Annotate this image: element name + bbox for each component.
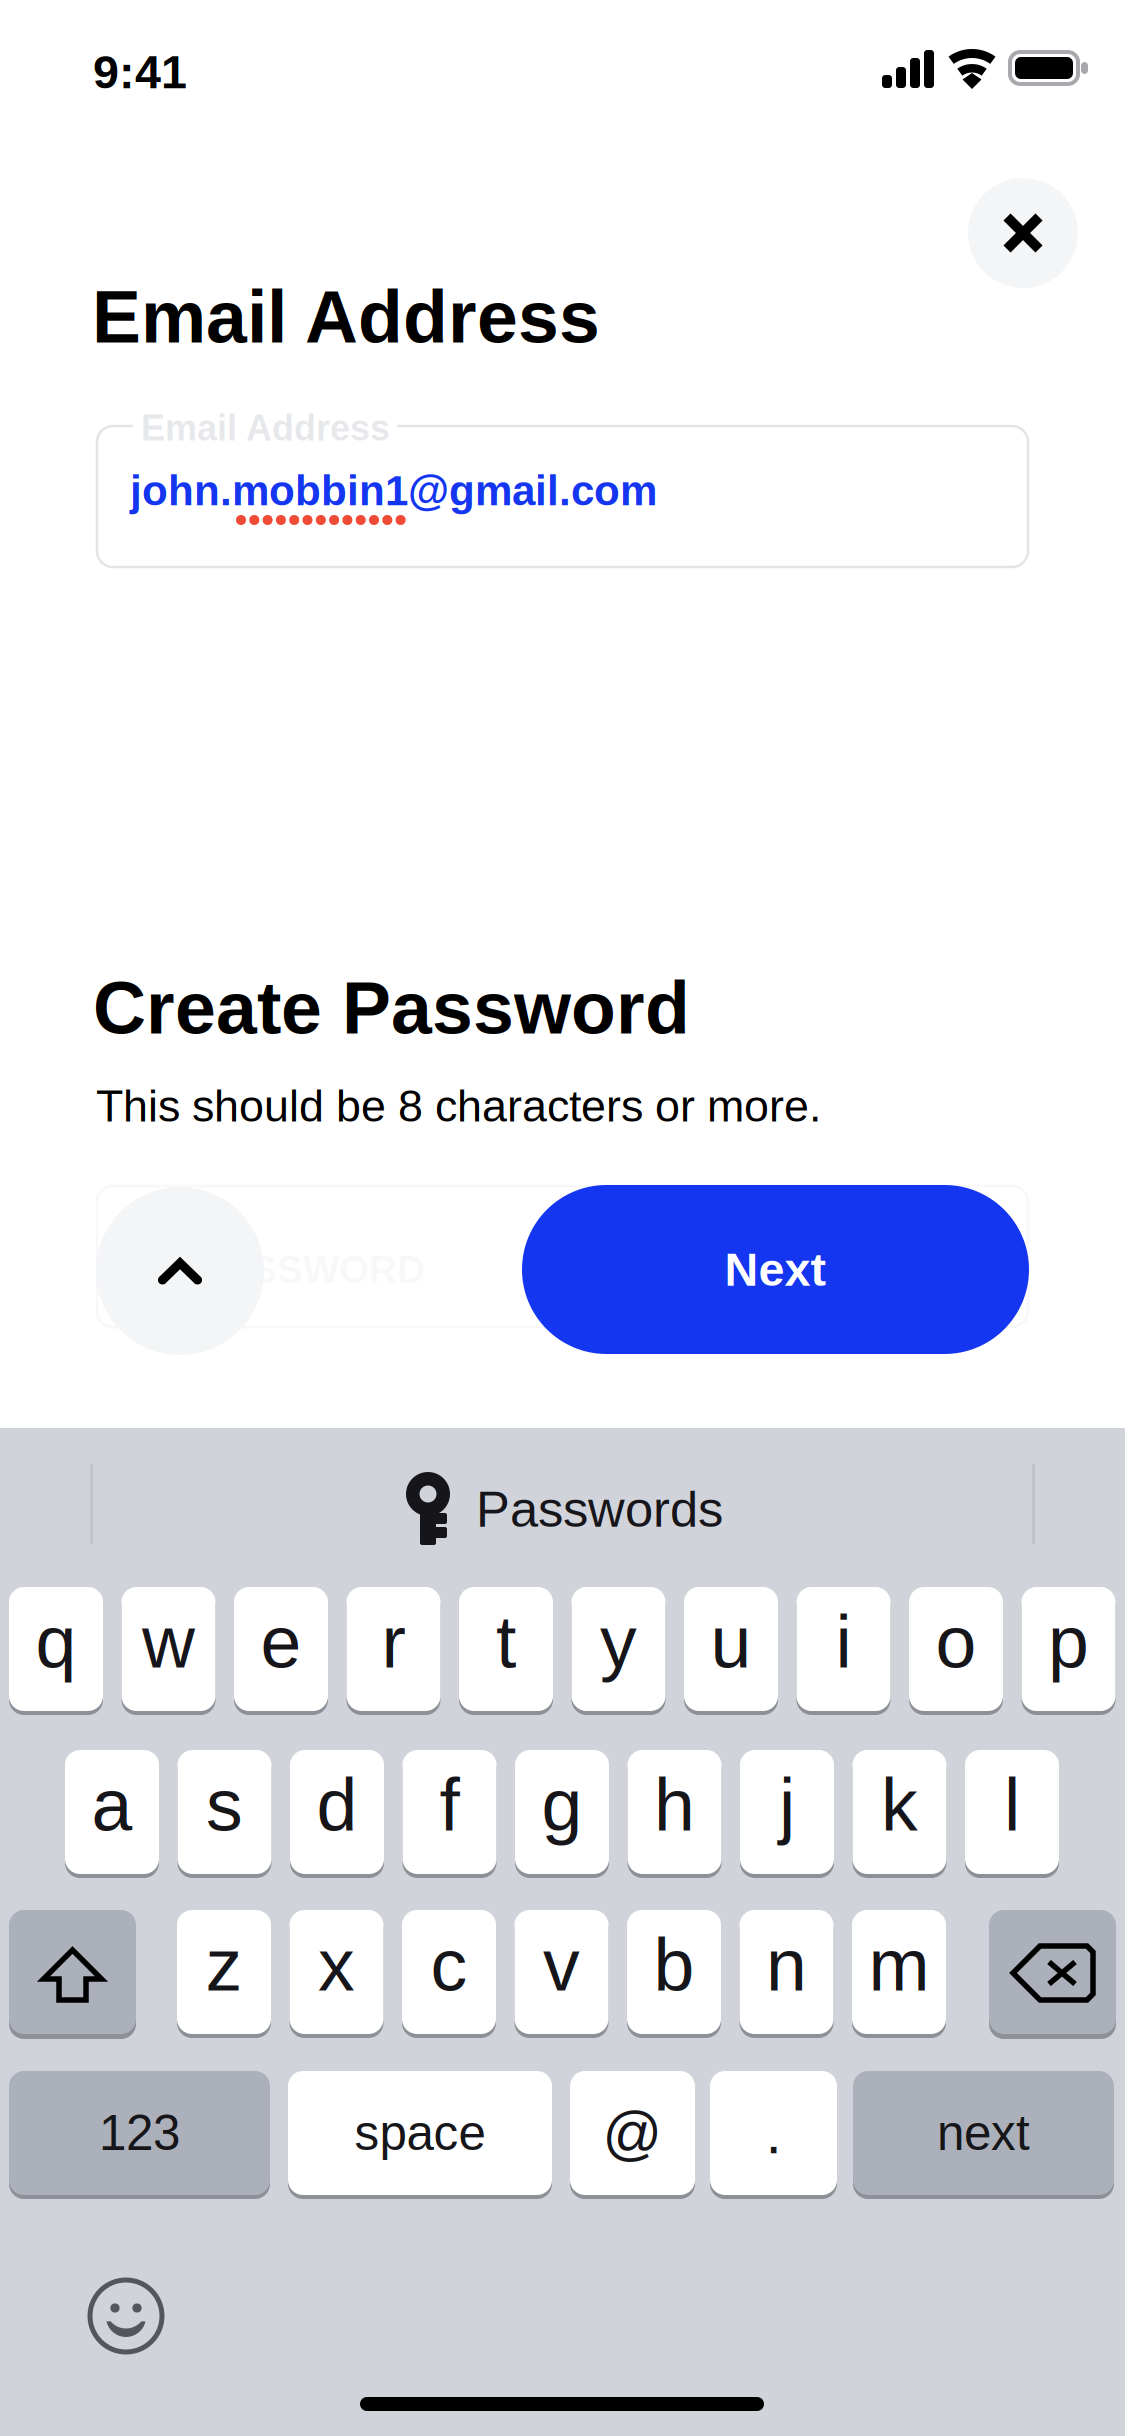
button[interactable]: k: [852, 1750, 946, 1878]
staticText: This should be 8 characters or more.: [96, 1081, 821, 1131]
button[interactable]: Close: [968, 178, 1078, 288]
button[interactable]: w: [121, 1587, 215, 1715]
button[interactable]: o: [909, 1587, 1003, 1715]
button[interactable]: i: [796, 1587, 890, 1715]
button[interactable]: .: [710, 2071, 837, 2199]
button[interactable]: h: [627, 1750, 721, 1878]
button[interactable]: Collapse: [96, 1187, 264, 1355]
staticText: d: [316, 1764, 357, 1846]
button[interactable]: 123: [9, 2071, 270, 2199]
staticText: u: [710, 1601, 751, 1683]
button[interactable]: Passwords: [406, 1469, 718, 1545]
staticText: Create Password: [93, 967, 690, 1049]
staticText: w: [142, 1601, 195, 1683]
staticText: a: [91, 1764, 132, 1846]
button[interactable]: @: [570, 2071, 695, 2199]
button[interactable]: m: [852, 1910, 946, 2038]
staticText: Next: [724, 1243, 826, 1295]
staticText: john.mobbin1@gmail.com: [130, 467, 657, 514]
staticText: Passwords: [476, 1481, 723, 1538]
staticText: n: [766, 1924, 807, 2006]
button[interactable]: q: [9, 1587, 103, 1715]
button[interactable]: Emoji keyboard: [86, 2276, 166, 2356]
staticText: r: [381, 1601, 405, 1683]
staticText: o: [935, 1601, 976, 1683]
staticText: next: [937, 2105, 1030, 2160]
staticText: @: [602, 2100, 662, 2166]
button[interactable]: Delete: [989, 1910, 1116, 2039]
staticText: s: [206, 1764, 243, 1846]
button[interactable]: Shift: [9, 1910, 136, 2039]
staticText: f: [439, 1764, 459, 1846]
staticText: z: [205, 1924, 242, 2006]
button[interactable]: r: [346, 1587, 440, 1715]
button[interactable]: y: [571, 1587, 665, 1715]
staticText: Email Address: [92, 276, 600, 358]
button[interactable]: f: [402, 1750, 496, 1878]
button[interactable]: j: [740, 1750, 834, 1878]
button[interactable]: d: [290, 1750, 384, 1878]
button[interactable]: s: [177, 1750, 271, 1878]
staticText: 123: [99, 2105, 180, 2160]
staticText: b: [653, 1924, 694, 2006]
button[interactable]: g: [515, 1750, 609, 1878]
button[interactable]: Next: [522, 1185, 1029, 1354]
button[interactable]: l: [965, 1750, 1059, 1878]
button[interactable]: next: [853, 2071, 1114, 2199]
staticText: i: [835, 1601, 851, 1683]
button[interactable]: e: [234, 1587, 328, 1715]
button[interactable]: a: [65, 1750, 159, 1878]
button[interactable]: t: [459, 1587, 553, 1715]
button[interactable]: b: [627, 1910, 721, 2038]
staticText: v: [543, 1924, 580, 2006]
staticText: t: [496, 1601, 516, 1683]
button[interactable]: x: [289, 1910, 383, 2038]
staticText: y: [600, 1601, 637, 1683]
staticText: l: [1004, 1764, 1020, 1846]
staticText: space: [354, 2105, 485, 2160]
button[interactable]: z: [177, 1910, 271, 2038]
staticText: Email Address: [141, 408, 390, 448]
staticText: h: [654, 1764, 695, 1846]
staticText: c: [430, 1924, 467, 2006]
staticText: e: [260, 1601, 301, 1683]
button[interactable]: space: [288, 2071, 552, 2199]
staticText: m: [868, 1924, 929, 2006]
button[interactable]: n: [739, 1910, 833, 2038]
button[interactable]: p: [1021, 1587, 1115, 1715]
staticText: .: [765, 2100, 781, 2166]
staticText: j: [779, 1764, 795, 1846]
staticText: k: [881, 1764, 918, 1846]
staticText: 9:41: [93, 46, 187, 98]
button[interactable]: u: [684, 1587, 778, 1715]
staticText: x: [318, 1924, 355, 2006]
staticText: PASSWORD: [200, 1248, 425, 1291]
button[interactable]: c: [402, 1910, 496, 2038]
staticText: q: [35, 1601, 76, 1683]
staticText: p: [1048, 1601, 1089, 1683]
button[interactable]: v: [514, 1910, 608, 2038]
staticText: g: [541, 1764, 582, 1846]
